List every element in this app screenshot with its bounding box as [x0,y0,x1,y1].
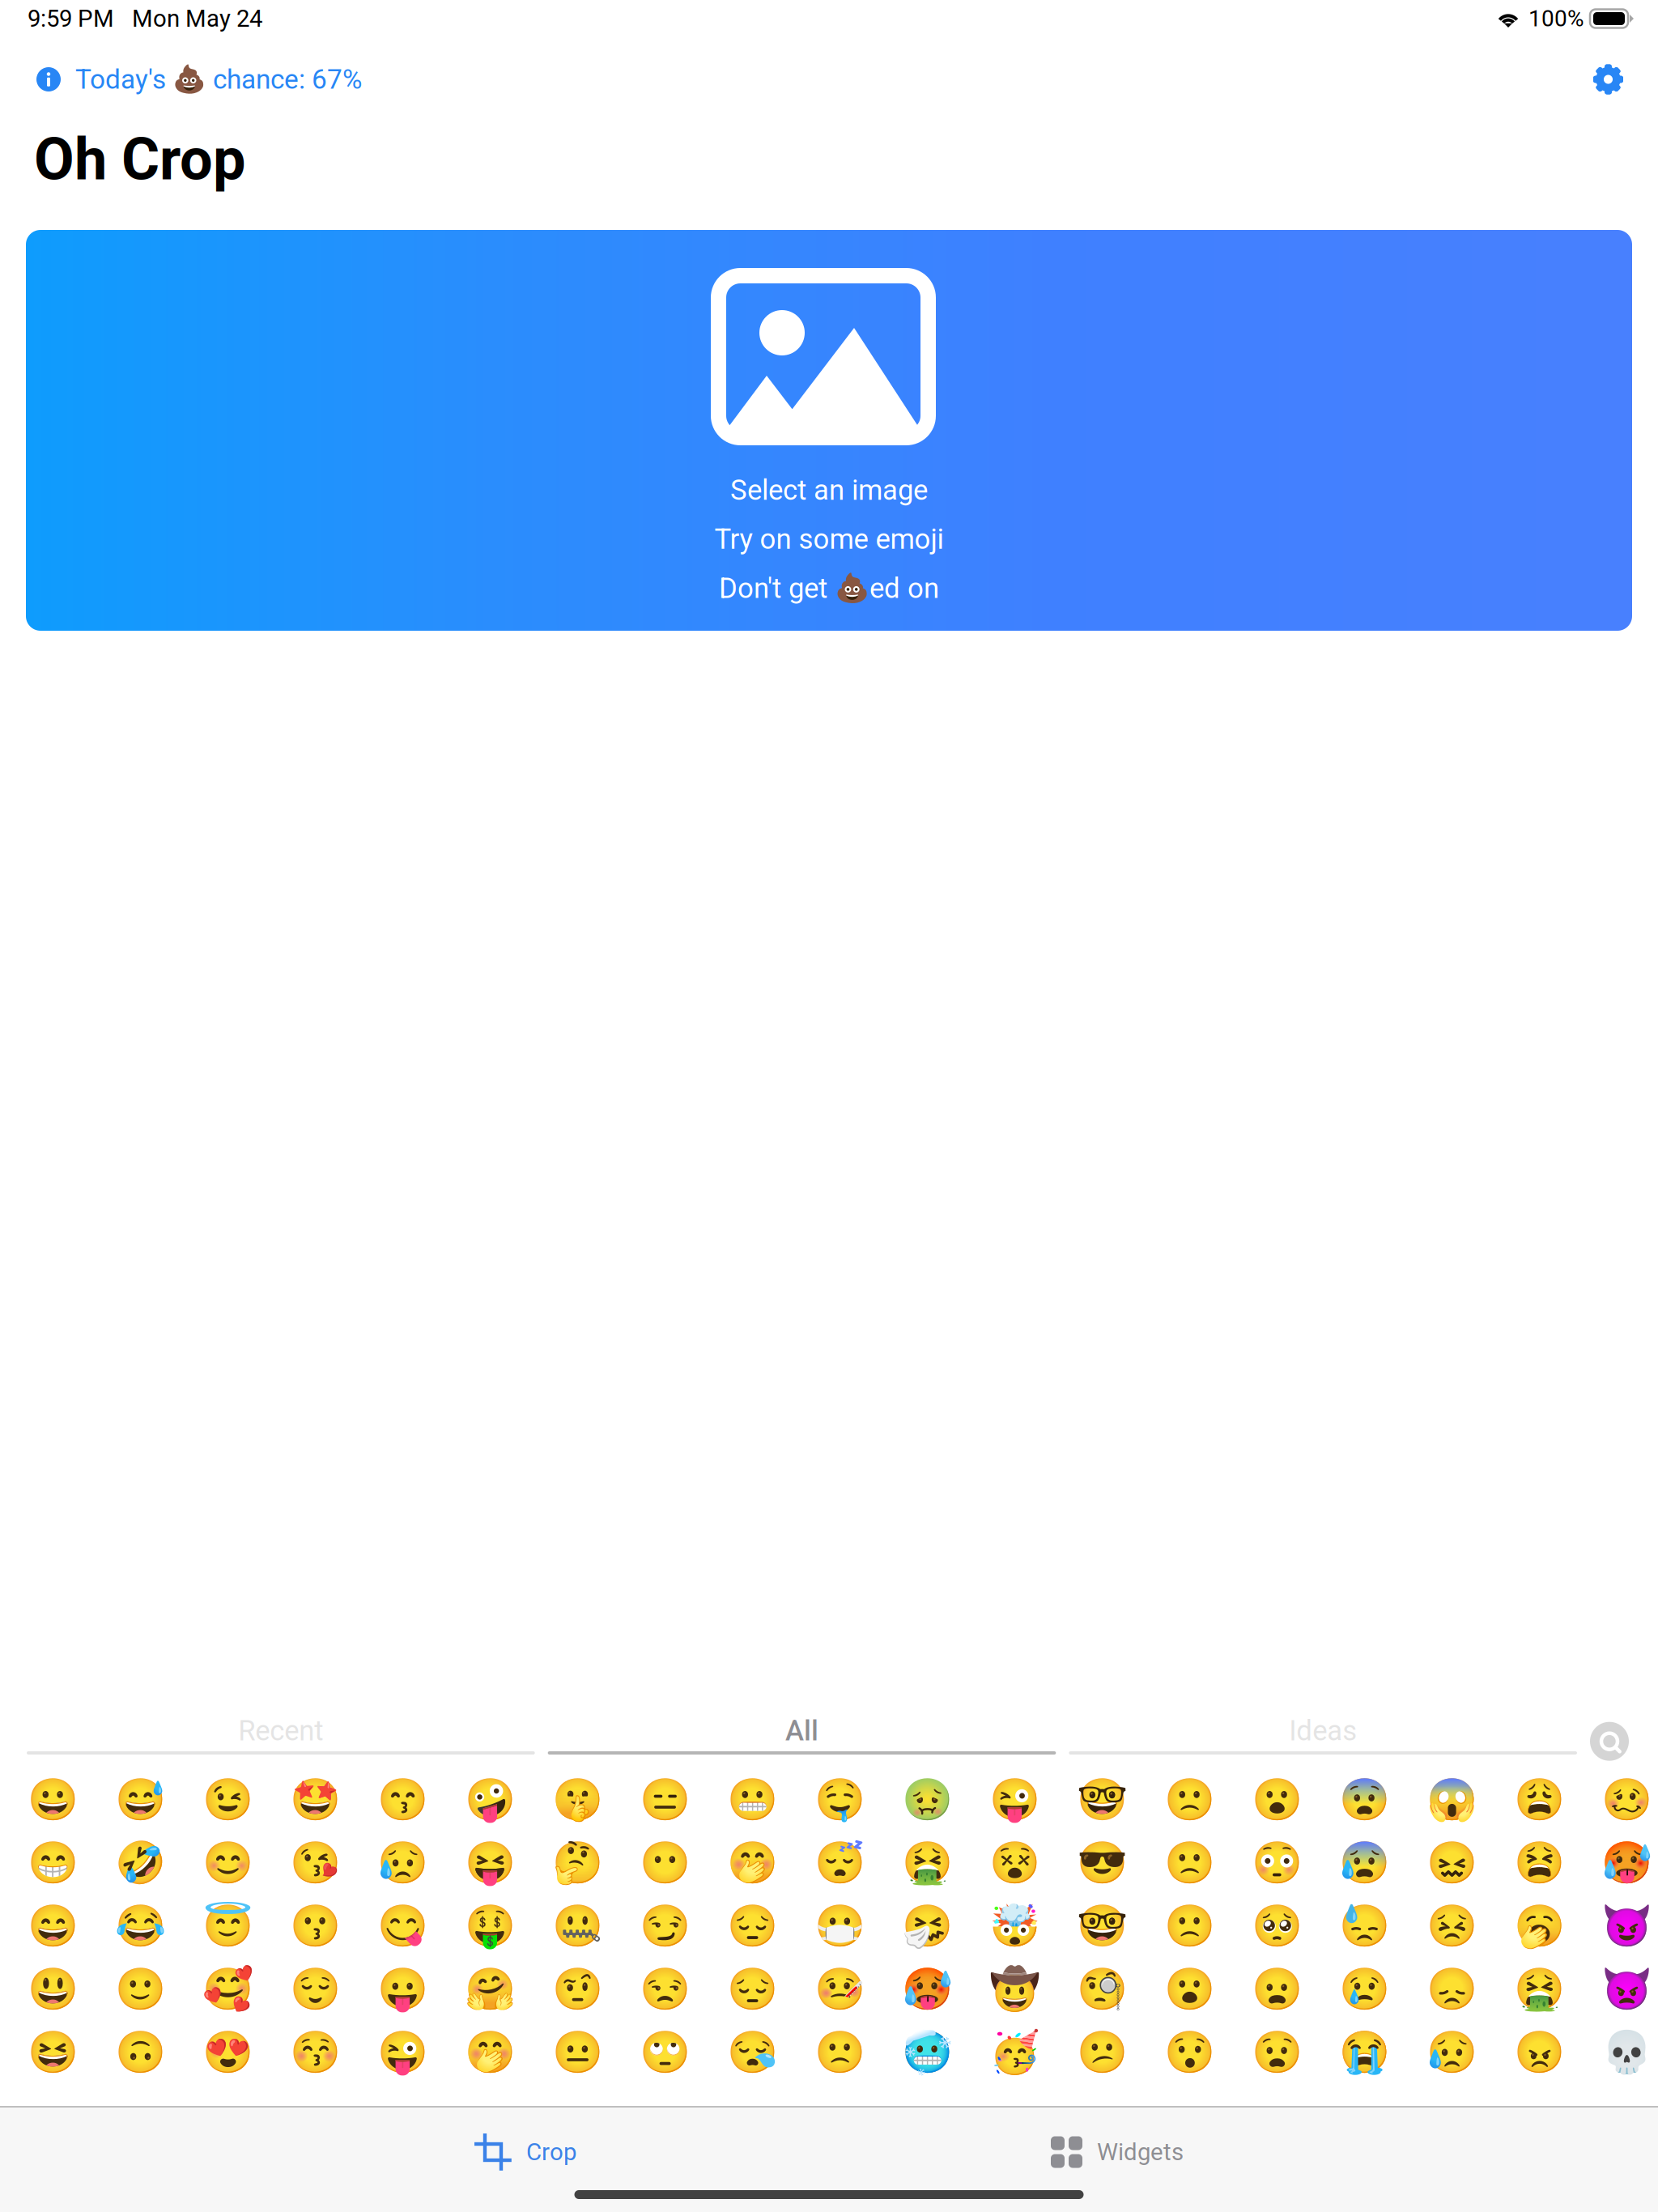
button[interactable]: 😜 [971,1768,1058,1831]
button[interactable]: 🥳 [971,2021,1058,2084]
button[interactable]: 🤫 [534,1768,621,1831]
button[interactable]: 😃 [9,1958,96,2021]
button[interactable]: 😗 [271,1895,359,1958]
button[interactable]: All [548,1714,1056,1768]
button[interactable]: 🤧 [883,1895,971,1958]
button[interactable]: 🙄 [621,2021,708,2084]
button[interactable]: 🤓 [1058,1768,1146,1831]
button[interactable]: 🥺 [1233,1895,1320,1958]
button[interactable]: 😕 [1058,2021,1146,2084]
button[interactable]: 🙁 [1146,1831,1233,1895]
button[interactable]: 💀 [1583,2021,1658,2084]
button[interactable]: 🤑 [446,1895,534,1958]
button[interactable]: 😂 [96,1895,184,1958]
button[interactable]: 😠 [1495,2021,1583,2084]
button[interactable]: 😀 [9,1768,96,1831]
button[interactable]: 😯 [1146,2021,1233,2084]
button[interactable]: 😛 [359,1958,446,2021]
button[interactable]: 😢 [1320,1958,1408,2021]
button[interactable]: 🤭 [446,2021,534,2084]
button[interactable]: 🥴 [1583,1768,1658,1831]
button[interactable]: Crop [474,2122,576,2182]
button[interactable]: 🤭 [708,1831,796,1895]
button[interactable]: 🙁 [796,2021,883,2084]
button[interactable]: 🥱 [1495,1895,1583,1958]
button[interactable]: 😘 [271,1831,359,1895]
button[interactable]: 😬 [708,1768,796,1831]
button[interactable]: Today's 💩 chance: 67% [36,59,362,100]
button[interactable]: 🥶 [883,2021,971,2084]
button[interactable]: Search emoji [1590,1722,1629,1761]
button[interactable]: 🤓 [1058,1895,1146,1958]
button[interactable]: 🤗 [446,1958,534,2021]
button[interactable]: 🙁 [1146,1768,1233,1831]
button[interactable]: 😥 [359,1831,446,1895]
button[interactable]: 🥵 [883,1958,971,2021]
button[interactable]: 😇 [184,1895,271,1958]
button[interactable]: 🥵 [1583,1831,1658,1895]
button[interactable]: 🤮 [883,1831,971,1895]
button[interactable]: 🤩 [271,1768,359,1831]
button[interactable]: 😧 [1233,2021,1320,2084]
button[interactable]: 😦 [1233,1958,1320,2021]
button[interactable]: 😓 [1320,1895,1408,1958]
button[interactable]: 😌 [271,1958,359,2021]
button[interactable]: 🤢 [883,1768,971,1831]
button[interactable]: 😒 [621,1958,708,2021]
button[interactable]: 🤠 [971,1958,1058,2021]
button[interactable]: 😚 [271,2021,359,2084]
button[interactable]: 😮 [1146,1958,1233,2021]
button[interactable]: 🤤 [796,1768,883,1831]
button[interactable]: 😥 [1408,2021,1495,2084]
button[interactable]: 😎 [1058,1831,1146,1895]
button[interactable]: 😏 [621,1895,708,1958]
button[interactable]: 😷 [796,1895,883,1958]
button[interactable]: 😰 [1320,1831,1408,1895]
button[interactable]: Recent [27,1714,535,1768]
button[interactable]: 😔 [708,1958,796,2021]
button[interactable]: 😮 [1233,1768,1320,1831]
button[interactable]: 🤪 [446,1768,534,1831]
button[interactable]: 😑 [621,1768,708,1831]
button[interactable]: Select an image [26,230,1632,631]
button[interactable]: 🤔 [534,1831,621,1895]
button[interactable]: 😄 [9,1895,96,1958]
button[interactable]: 😳 [1233,1831,1320,1895]
button[interactable]: 😋 [359,1895,446,1958]
button[interactable]: 🧐 [1058,1958,1146,2021]
button[interactable]: 😆 [9,2021,96,2084]
button[interactable]: 😍 [184,2021,271,2084]
button[interactable]: 😨 [1320,1768,1408,1831]
button[interactable]: 😜 [359,2021,446,2084]
button[interactable]: 🙃 [96,2021,184,2084]
button[interactable]: 😖 [1408,1831,1495,1895]
button[interactable]: 🤐 [534,1895,621,1958]
button[interactable]: 🤣 [96,1831,184,1895]
button[interactable]: 😪 [708,2021,796,2084]
button[interactable]: 😅 [96,1768,184,1831]
button[interactable]: 😙 [359,1768,446,1831]
button[interactable]: 😩 [1495,1768,1583,1831]
button[interactable]: 😴 [796,1831,883,1895]
button[interactable]: 😁 [9,1831,96,1895]
button[interactable]: 😐 [534,2021,621,2084]
button[interactable]: 😭 [1320,2021,1408,2084]
button[interactable]: Ideas [1069,1714,1577,1768]
button[interactable]: 🙂 [96,1958,184,2021]
button[interactable]: 😊 [184,1831,271,1895]
button[interactable]: 😞 [1408,1958,1495,2021]
button[interactable]: 😶 [621,1831,708,1895]
button[interactable]: 😈 [1583,1895,1658,1958]
button[interactable]: 😣 [1408,1895,1495,1958]
button[interactable]: 🤯 [971,1895,1058,1958]
button[interactable]: 😱 [1408,1768,1495,1831]
button[interactable]: 😫 [1495,1831,1583,1895]
button[interactable]: 🥰 [184,1958,271,2021]
button[interactable]: 😉 [184,1768,271,1831]
button[interactable]: Settings [1591,62,1626,97]
button[interactable]: 🤒 [796,1958,883,2021]
button[interactable]: 😝 [446,1831,534,1895]
button[interactable]: 🤮 [1495,1958,1583,2021]
button[interactable]: Widgets [1051,2125,1184,2179]
button[interactable]: 🤨 [534,1958,621,2021]
